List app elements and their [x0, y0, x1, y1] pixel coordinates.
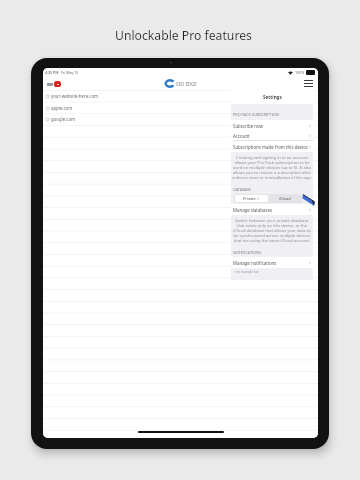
button[interactable]: your-website-here.com: [43, 90, 318, 102]
button[interactable]: Private ✓: [235, 195, 268, 202]
staticText: Manage databases: [233, 207, 272, 213]
button[interactable]: Manage notifications: [231, 257, 313, 268]
button[interactable]: Manage databases: [231, 204, 313, 215]
staticText: Creating and signing in to an account al…: [232, 155, 312, 180]
staticText: DATABASE: [233, 187, 252, 192]
button[interactable]: Subscribe now: [231, 120, 313, 131]
staticText: NOTIFICATIONS: [233, 250, 262, 255]
staticText: Fri May 15: [61, 70, 79, 75]
staticText: Account: [233, 133, 250, 139]
staticText: Unlockable Pro features: [115, 27, 252, 44]
staticText: 4:25 PM: [45, 70, 59, 75]
staticText: Settings: [263, 94, 282, 100]
button[interactable]: iCloud: [268, 195, 302, 202]
button[interactable]: google.com: [43, 113, 318, 125]
staticText: PRO PACK SUBSCRIPTION: [233, 112, 279, 117]
staticText: Subscriptions made from this device: [233, 144, 308, 150]
staticText: Switch between your private database tha…: [232, 218, 312, 243]
button[interactable]: Subscriptions made from this device: [231, 141, 313, 152]
staticText: apple.com: [51, 105, 73, 111]
staticText: SEO EDGE: [176, 81, 197, 87]
staticText: your-website-here.com: [51, 93, 99, 99]
staticText: google.com: [51, 116, 76, 122]
button[interactable]: Menu: [304, 80, 313, 87]
staticText: Manage notifications: [233, 260, 277, 266]
button[interactable]: apple.com: [43, 102, 318, 114]
staticText: 100%: [295, 70, 305, 75]
staticText: Private ✓: [243, 196, 260, 201]
staticText: iCloud: [279, 196, 291, 201]
button[interactable]: Account: [231, 130, 313, 141]
staticText: am, example bar: [235, 270, 259, 274]
staticText: Subscribe now: [233, 123, 264, 129]
